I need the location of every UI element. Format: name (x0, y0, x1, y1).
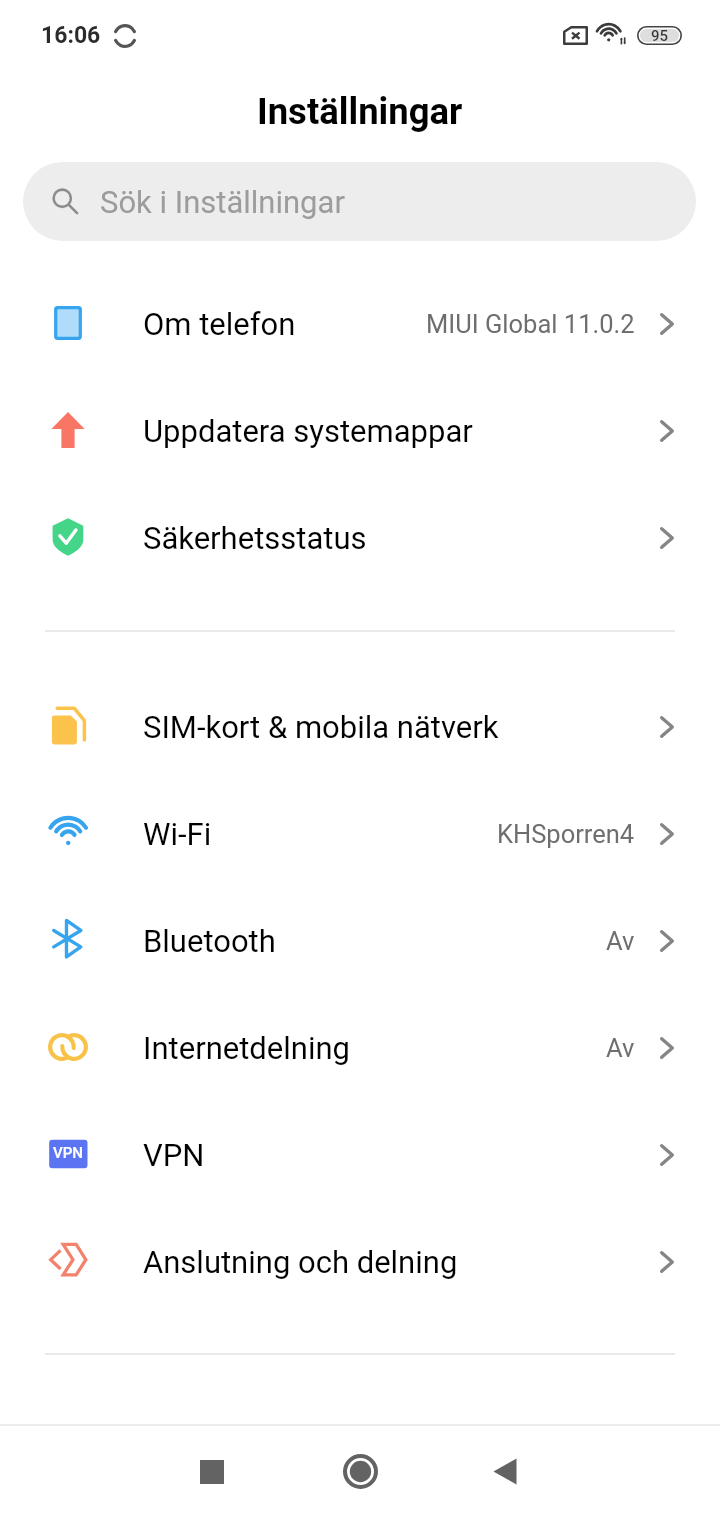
staticText: Internetdelning (143, 1030, 350, 1066)
staticText: Uppdatera systemappar (143, 413, 473, 449)
staticText: 16:06 (41, 22, 101, 49)
staticText: Av (606, 926, 635, 956)
button[interactable]: Internetdelning (0, 994, 720, 1101)
staticText: Om telefon (143, 306, 296, 342)
staticText: Bluetooth (143, 923, 276, 959)
button[interactable]: SIM-kort & mobila nätverk (0, 673, 720, 780)
button[interactable]: Säkerhetsstatus (0, 484, 720, 591)
button[interactable]: Anslutning och delning (0, 1208, 720, 1315)
staticText: KHSporren4 (497, 819, 635, 849)
staticText: SIM-kort & mobila nätverk (143, 709, 499, 745)
button[interactable]: Home (286, 1425, 435, 1518)
staticText: Anslutning och delning (143, 1244, 458, 1280)
button[interactable]: VPN (0, 1101, 720, 1208)
button[interactable]: Wi-Fi (0, 780, 720, 887)
staticText: Inställningar (257, 90, 463, 133)
button[interactable]: Om telefon (0, 270, 720, 377)
button[interactable]: Uppdatera systemappar (0, 377, 720, 484)
button[interactable]: Bluetooth (0, 887, 720, 994)
button[interactable]: Back (435, 1425, 584, 1518)
staticText: VPN (53, 1144, 83, 1162)
staticText: 95 (651, 27, 669, 45)
staticText: MIUI Global 11.0.2 (426, 309, 635, 339)
staticText: VPN (143, 1137, 205, 1173)
staticText: Säkerhetsstatus (143, 520, 367, 556)
staticText: Av (606, 1033, 635, 1063)
button[interactable]: Sök i Inställningar (23, 162, 696, 241)
button[interactable]: Recent apps (137, 1425, 286, 1518)
staticText: Sök i Inställningar (100, 184, 345, 220)
staticText: Wi-Fi (143, 816, 212, 852)
